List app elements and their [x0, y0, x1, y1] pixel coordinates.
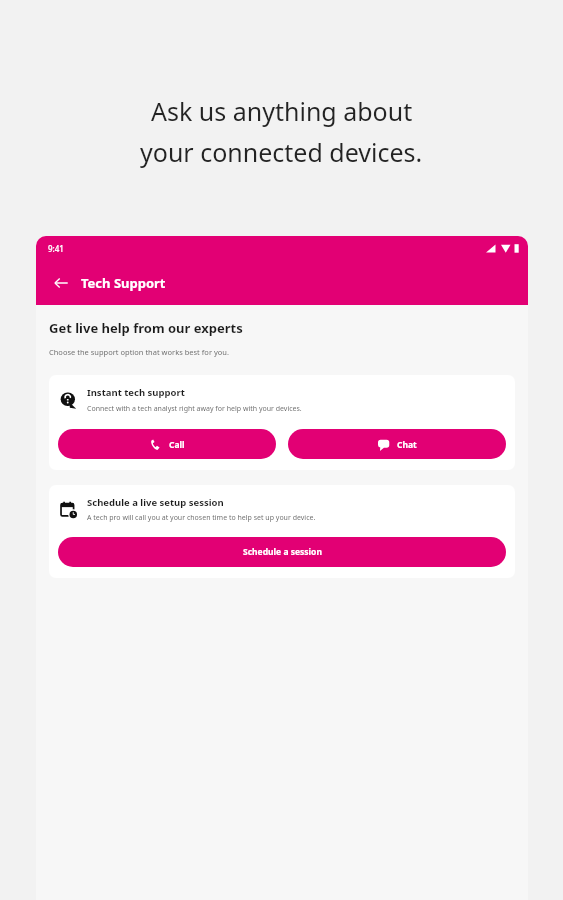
staticText: Schedule a live setup session — [87, 496, 224, 509]
staticText: Choose the support option that works bes… — [49, 347, 229, 357]
button[interactable]: Call — [58, 429, 276, 459]
staticText: Connect with a tech analyst right away f… — [87, 404, 302, 414]
staticText: Call — [169, 439, 185, 451]
staticText: Tech Support — [81, 274, 166, 292]
button[interactable]: Back — [43, 265, 79, 301]
staticText: A tech pro will call you at your chosen … — [87, 513, 316, 523]
staticText: Instant tech support — [87, 386, 185, 399]
button[interactable]: Chat — [288, 429, 506, 459]
staticText: Chat — [397, 439, 417, 451]
staticText: your connected devices. — [140, 135, 423, 169]
staticText: 9:41 — [48, 243, 64, 254]
staticText: Schedule a session — [243, 546, 322, 558]
staticText: Get live help from our experts — [49, 319, 243, 337]
staticText: Ask us anything about — [151, 94, 413, 128]
button[interactable]: Schedule a session — [58, 537, 506, 567]
